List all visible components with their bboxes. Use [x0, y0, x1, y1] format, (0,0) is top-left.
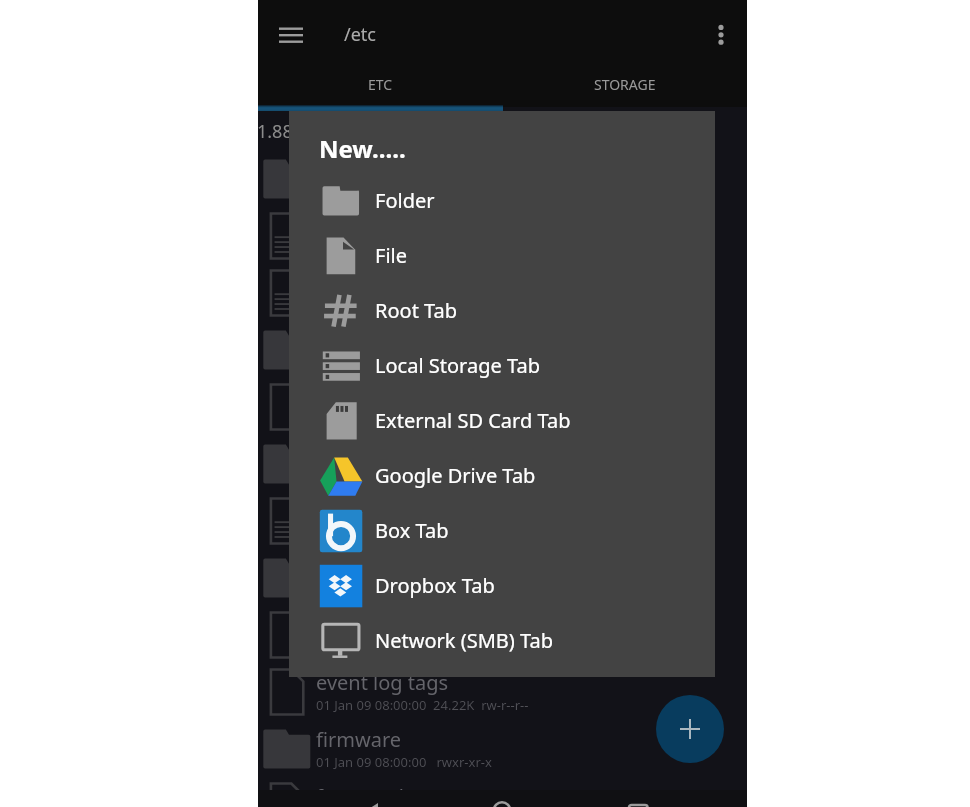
- button[interactable]: STORAGE: [502, 62, 747, 107]
- button[interactable]: ETC: [258, 62, 502, 107]
- staticText: 1.88G free of 3.06G: [258, 119, 420, 144]
- staticText: hosts: [316, 498, 367, 525]
- button[interactable]: Network (SMB) Tab: [289, 613, 715, 668]
- staticText: Dropbox Tab: [375, 572, 495, 599]
- staticText: 01 Jan 09 08:00:00 24.22K rw-r--r--: [316, 696, 529, 714]
- staticText: event log tags: [316, 669, 449, 696]
- staticText: Root Tab: [375, 297, 458, 324]
- staticText: 01 Jan 09 08:00:00 1.01K rw-r--r--: [316, 411, 521, 429]
- button[interactable]: Dropbox Tab: [289, 558, 715, 613]
- staticText: New.....: [319, 132, 406, 165]
- button[interactable]: dnsmasq.conf: [258, 606, 747, 663]
- button[interactable]: dbus.conf: [258, 378, 747, 435]
- button[interactable]: Google Drive Tab: [289, 448, 715, 503]
- button[interactable]: Create new: [656, 695, 724, 763]
- button[interactable]: bluetooth: [258, 150, 747, 207]
- button[interactable]: permissions: [258, 549, 747, 606]
- staticText: init.d: [316, 441, 364, 468]
- staticText: fonts.xml: [316, 783, 404, 790]
- staticText: 01 Jan 09 08:00:00 1.17K rw-r--r--: [316, 297, 521, 315]
- staticText: dnsmasq.conf: [316, 612, 449, 639]
- button[interactable]: Local Storage Tab: [289, 338, 715, 393]
- button[interactable]: Root Tab: [289, 283, 715, 338]
- button[interactable]: hosts: [258, 492, 747, 549]
- button[interactable]: Folder: [289, 173, 715, 228]
- staticText: /etc: [344, 22, 376, 47]
- staticText: Network (SMB) Tab: [375, 627, 554, 654]
- staticText: File: [375, 242, 407, 269]
- staticText: 01 Jan 09 08:00:00 22.50K rw-r--r--: [316, 240, 529, 258]
- staticText: audio_effects.conf: [316, 270, 488, 297]
- button[interactable]: File: [289, 228, 715, 283]
- button[interactable]: event log tags: [258, 663, 747, 720]
- button[interactable]: More options: [708, 20, 734, 46]
- staticText: Google Drive Tab: [375, 462, 536, 489]
- staticText: bluetooth: [316, 156, 409, 183]
- staticText: External SD Card Tab: [375, 407, 571, 434]
- button[interactable]: Box Tab: [289, 503, 715, 558]
- staticText: STORAGE: [594, 75, 656, 94]
- staticText: permissions: [316, 555, 431, 582]
- staticText: ETC: [368, 75, 393, 94]
- staticText: 01 Jan 09 08:00:00 1.12K rw-r--r--: [316, 639, 521, 657]
- button[interactable]: fonts.xml: [258, 777, 747, 790]
- staticText: 01 Jan 09 08:00:00 rwxr-xr-x: [316, 354, 492, 372]
- button[interactable]: External SD Card Tab: [289, 393, 715, 448]
- staticText: Local Storage Tab: [375, 352, 540, 379]
- staticText: 01 Jan 09 08:00:00 rwxr-xr-x: [316, 183, 492, 201]
- staticText: apns-conf.xml: [316, 213, 449, 240]
- staticText: 01 Jan 09 08:00:00 rwxr-xr-x: [316, 582, 492, 600]
- button[interactable]: init.d: [258, 435, 747, 492]
- staticText: firmware: [316, 726, 402, 753]
- button[interactable]: audio_effects.conf: [258, 264, 747, 321]
- button[interactable]: firmware: [258, 720, 747, 777]
- staticText: 01 Jan 09 08:00:00 1.31K rw-r--r--: [316, 525, 521, 543]
- staticText: dhcpcd: [316, 327, 385, 354]
- staticText: Box Tab: [375, 517, 449, 544]
- staticText: 01 Jan 09 08:00:00 rwxr-xr-x: [316, 468, 492, 486]
- button[interactable]: dhcpcd: [258, 321, 747, 378]
- button[interactable]: apns-conf.xml: [258, 207, 747, 264]
- button[interactable]: Open navigation drawer: [278, 21, 304, 47]
- staticText: Folder: [375, 187, 435, 214]
- staticText: 01 Jan 09 08:00:00 rwxr-xr-x: [316, 753, 492, 771]
- staticText: dbus.conf: [316, 384, 409, 411]
